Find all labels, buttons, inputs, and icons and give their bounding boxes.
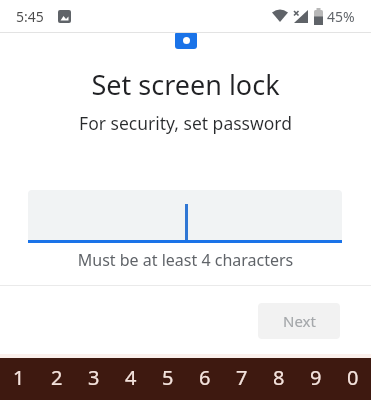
staticText: 1 xyxy=(13,364,25,391)
staticText: 9 xyxy=(310,364,322,391)
button[interactable]: 3 xyxy=(75,358,112,400)
button[interactable] xyxy=(28,190,342,243)
button[interactable]: 6 xyxy=(186,358,223,400)
staticText: Set screen lock xyxy=(0,66,371,103)
button[interactable]: 9 xyxy=(297,358,334,400)
staticText: Next xyxy=(283,311,316,331)
staticText: 3 xyxy=(88,364,100,391)
button[interactable]: 4 xyxy=(112,358,149,400)
staticText: 2 xyxy=(51,364,63,391)
staticText: 5:45 xyxy=(16,7,44,26)
staticText: For security, set password xyxy=(0,111,371,135)
staticText: 45% xyxy=(327,7,355,26)
staticText: 4 xyxy=(125,364,137,391)
button[interactable]: 0 xyxy=(334,358,371,400)
staticText: 5 xyxy=(162,364,174,391)
button[interactable]: 2 xyxy=(38,358,75,400)
staticText: 7 xyxy=(236,364,248,391)
staticText: 0 xyxy=(347,364,359,391)
staticText: 8 xyxy=(273,364,285,391)
button[interactable]: 7 xyxy=(223,358,260,400)
staticText: 6 xyxy=(199,364,211,391)
button[interactable]: 8 xyxy=(260,358,297,400)
button[interactable]: 1 xyxy=(0,358,38,400)
staticText: Must be at least 4 characters xyxy=(0,249,371,271)
button[interactable]: 5 xyxy=(149,358,186,400)
button[interactable]: Next xyxy=(258,303,340,339)
